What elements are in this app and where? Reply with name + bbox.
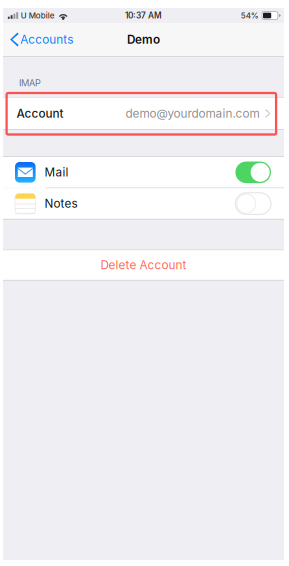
button[interactable]: Notes <box>3 188 284 219</box>
staticText: Demo <box>127 32 160 47</box>
staticText: demo@yourdomain.com <box>125 106 259 121</box>
button[interactable]: Mail <box>3 157 284 188</box>
staticText: Notes <box>44 196 77 211</box>
staticText: Mail <box>44 165 68 179</box>
staticText: Delete Account <box>100 258 186 272</box>
staticText: 10:37 AM <box>125 10 162 20</box>
button[interactable]: Accounts <box>3 23 81 56</box>
staticText: Account <box>16 106 63 121</box>
staticText: U Mobile <box>21 11 55 20</box>
button[interactable]: Account <box>3 98 284 129</box>
staticText: IMAP <box>19 77 41 88</box>
button[interactable]: Delete Account <box>3 250 284 280</box>
staticText: Accounts <box>20 32 73 47</box>
staticText: 54% <box>241 11 259 20</box>
